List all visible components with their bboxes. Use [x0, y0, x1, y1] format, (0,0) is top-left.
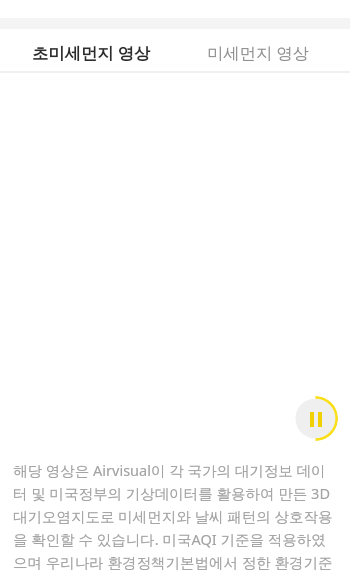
button[interactable]: 초미세먼지 영상: [0, 29, 175, 71]
staticText: 해당 영상은 Airvisual이 각 국가의 대기정보 데이터 및 미국정부의…: [13, 460, 338, 572]
staticText: 초미세먼지 영상: [32, 42, 151, 64]
staticText: 미세먼지 영상: [207, 42, 310, 64]
button[interactable]: 미세먼지 영상: [175, 29, 350, 71]
button[interactable]: Pause video: [293, 396, 338, 441]
